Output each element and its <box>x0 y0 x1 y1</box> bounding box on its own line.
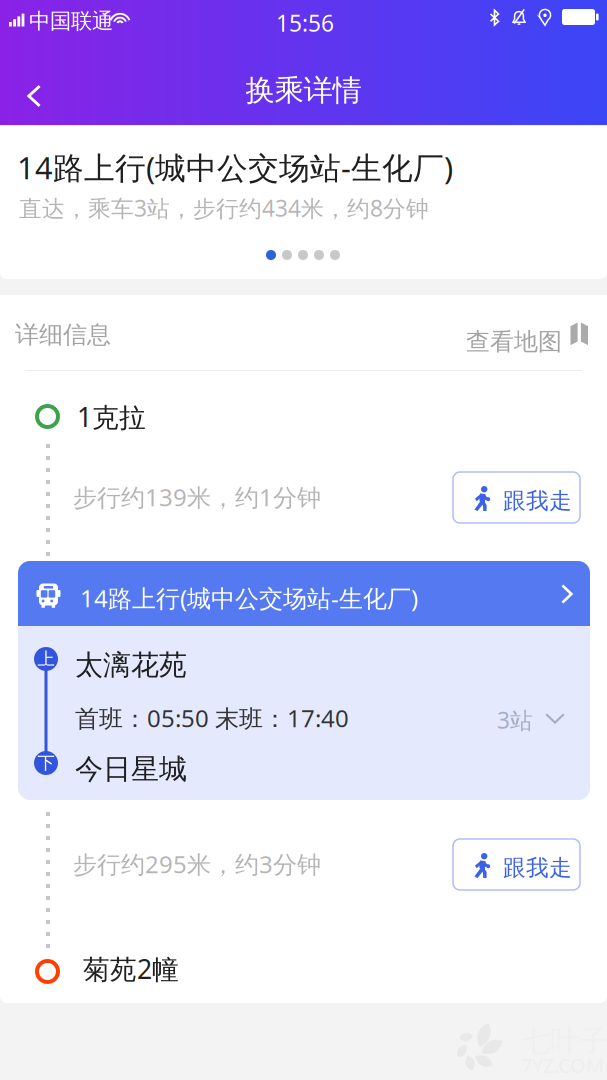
button[interactable]: 14路上行(城中公交场站-生化厂) <box>18 561 590 626</box>
button[interactable]: 跟我走 <box>453 839 580 890</box>
staticText: 3站 <box>497 705 533 735</box>
staticText: 太漓花苑 <box>75 648 187 682</box>
staticText: 14路上行(城中公交场站-生化厂) <box>80 582 418 614</box>
staticText: 跟我走 <box>503 854 572 882</box>
staticText: 今日星城 <box>75 752 187 786</box>
staticText: 跟我走 <box>503 487 572 515</box>
staticText: 步行约295米，约3分钟 <box>73 848 321 880</box>
staticText: 1克拉 <box>77 399 146 434</box>
staticText: 换乘详情 <box>245 72 361 108</box>
staticText: 下 <box>37 752 54 774</box>
button[interactable]: 3站 <box>497 702 569 734</box>
staticText: 中国联通 <box>29 8 113 34</box>
staticText: 直达，乘车3站，步行约434米，约8分钟 <box>19 193 429 223</box>
staticText: 首班：05:50 末班：17:40 <box>75 702 349 734</box>
button[interactable]: Back <box>3 61 65 131</box>
staticText: 步行约139米，约1分钟 <box>73 481 321 513</box>
staticText: 查看地图 <box>466 327 562 356</box>
staticText: 菊苑2幢 <box>83 951 179 986</box>
staticText: 15:56 <box>276 8 334 38</box>
staticText: 详细信息 <box>15 320 111 349</box>
button[interactable]: 查看地图 <box>466 322 590 354</box>
staticText: 上 <box>37 648 54 670</box>
staticText: 14路上行(城中公交场站-生化厂) <box>17 147 453 188</box>
button[interactable]: 跟我走 <box>453 472 580 523</box>
